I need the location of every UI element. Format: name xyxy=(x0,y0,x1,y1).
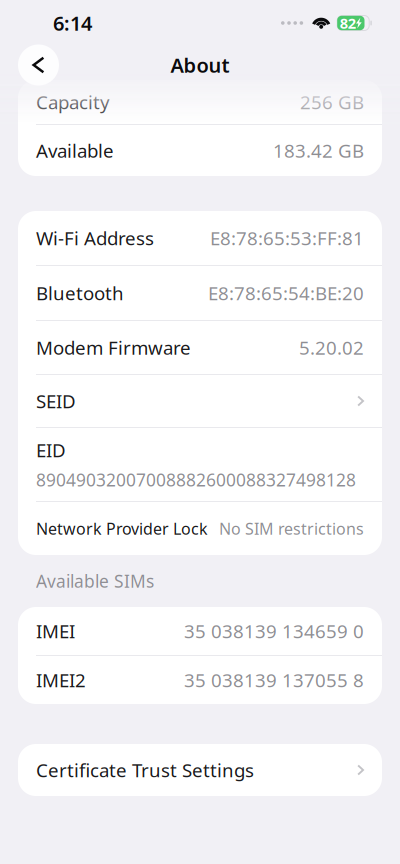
staticText: Available xyxy=(36,138,114,163)
staticText: 89049032007008882600088327498128 xyxy=(36,468,356,491)
staticText: No SIM restrictions xyxy=(219,518,364,539)
staticText: Available SIMs xyxy=(36,569,154,592)
staticText: 6:14 xyxy=(53,10,92,36)
staticText: IMEI2 xyxy=(36,668,86,692)
staticText: 183.42 GB xyxy=(273,138,364,163)
staticText: Wi-Fi Address xyxy=(36,226,154,250)
staticText: 82 xyxy=(340,13,356,33)
staticText: Certificate Trust Settings xyxy=(36,758,254,782)
staticText: 5.20.02 xyxy=(299,335,364,360)
staticText: Modem Firmware xyxy=(36,335,191,360)
staticText: Bluetooth xyxy=(36,281,124,305)
staticText: 256 GB xyxy=(300,90,364,114)
staticText: IMEI xyxy=(36,619,75,643)
button[interactable]: SEID xyxy=(18,375,382,427)
staticText: E8:78:65:53:FF:81 xyxy=(210,226,364,250)
staticText: Capacity xyxy=(36,90,110,114)
staticText: About xyxy=(170,52,229,78)
button[interactable]: Back xyxy=(18,44,59,85)
staticText: E8:78:65:54:BE:20 xyxy=(208,281,364,305)
staticText: 35 038139 134659 0 xyxy=(184,619,364,643)
staticText: Network Provider Lock xyxy=(36,518,208,539)
staticText: EID xyxy=(36,438,66,462)
button[interactable]: Certificate Trust Settings xyxy=(18,744,382,796)
staticText: SEID xyxy=(36,389,76,413)
staticText: 35 038139 137055 8 xyxy=(184,668,364,692)
